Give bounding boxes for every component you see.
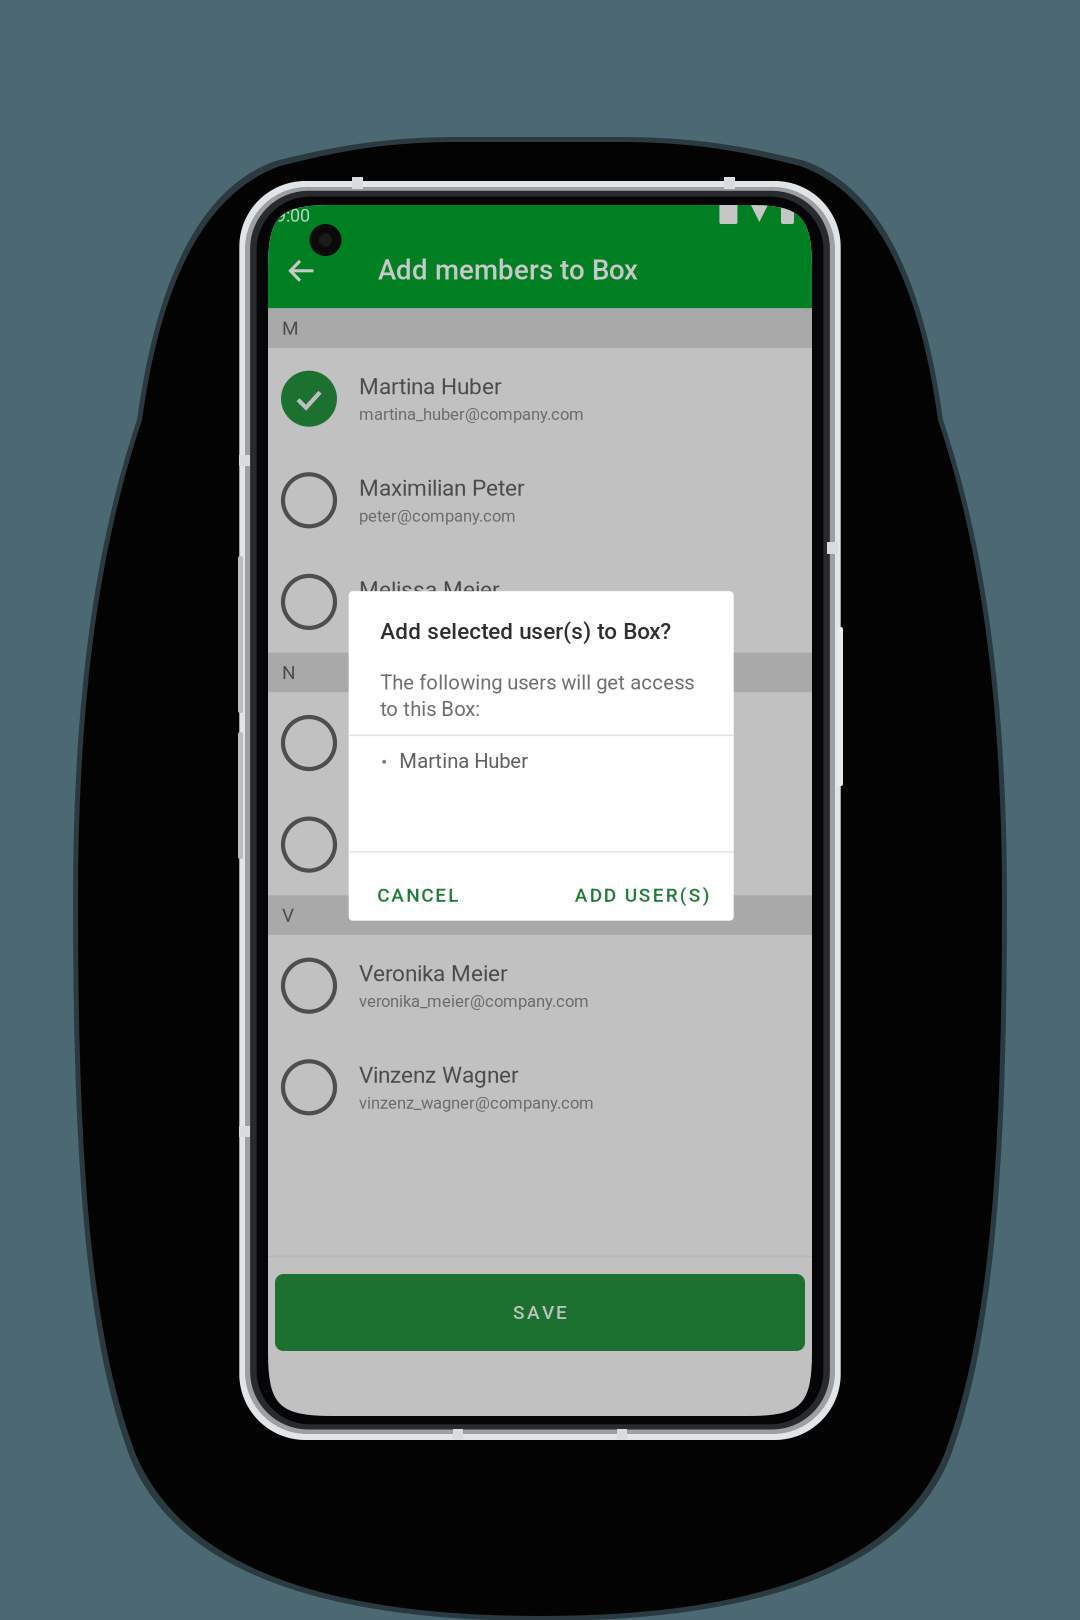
staticText: nina_fischer@company.com — [359, 749, 567, 768]
staticText: Veronika Meier — [359, 960, 508, 987]
button[interactable]: Melissa Meier — [268, 551, 812, 653]
button[interactable]: S A V E — [268, 1274, 812, 1351]
staticText: Nina Fischer — [359, 717, 483, 744]
staticText: N — [282, 661, 296, 684]
staticText: Add selected user(s) to Box? — [380, 618, 671, 644]
staticText: V — [282, 904, 294, 926]
staticText: peter@company.com — [359, 506, 516, 526]
button[interactable]: Veronika Meier — [268, 935, 812, 1036]
staticText: A D D U S E R ( S ) — [575, 884, 710, 906]
staticText: Melissa Meier — [359, 576, 500, 603]
staticText: Martina Huber — [359, 373, 502, 400]
button[interactable]: Martina Huber — [268, 348, 812, 449]
staticText: Vinzenz Wagner — [359, 1062, 519, 1088]
button[interactable]: C A N C E L — [364, 868, 471, 922]
staticText: nora_schmid@company.com — [359, 851, 572, 870]
staticText: veronika_meier@company.com — [359, 992, 589, 1011]
staticText: • — [381, 751, 387, 773]
button[interactable]: Nina Fischer — [268, 692, 812, 794]
button[interactable]: Back — [276, 246, 327, 295]
staticText: martina_huber@company.com — [359, 405, 584, 424]
button[interactable]: Maximilian Peter — [268, 449, 812, 551]
staticText: vinzenz_wagner@company.com — [359, 1093, 594, 1113]
button[interactable]: Nora Schmid — [268, 794, 812, 895]
staticText: Maximilian Peter — [359, 475, 525, 501]
staticText: Add members to Box — [378, 254, 638, 286]
button[interactable]: Vinzenz Wagner — [268, 1036, 812, 1138]
staticText: S A V E — [513, 1301, 567, 1324]
button[interactable]: A D D U S E R ( S ) — [562, 868, 723, 922]
staticText: C A N C E L — [377, 884, 458, 906]
staticText: M — [282, 317, 299, 339]
staticText: The following users will get access — [380, 671, 694, 694]
staticText: Martina Huber — [399, 749, 528, 773]
staticText: to this Box: — [380, 697, 480, 721]
staticText: 9:00 — [276, 205, 310, 226]
staticText: melissa_meier@company.com — [359, 608, 587, 627]
